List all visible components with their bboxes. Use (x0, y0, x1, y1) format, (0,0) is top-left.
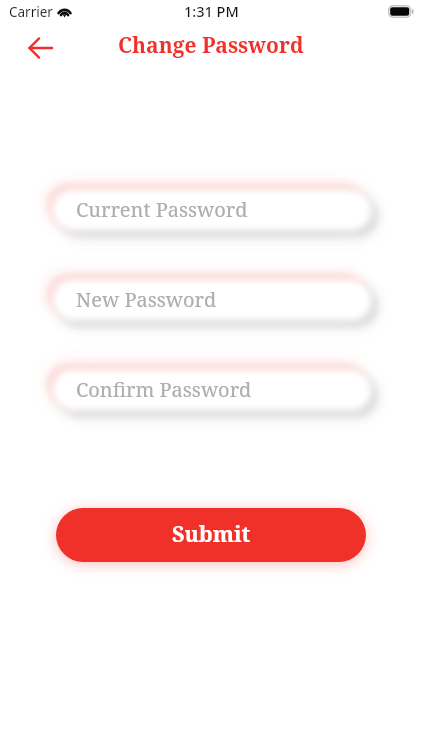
staticText: 1:31 PM (184, 1, 239, 21)
button[interactable]: Submit (40, 492, 382, 578)
staticText: Confirm Password (76, 376, 252, 403)
staticText: Submit (172, 519, 251, 548)
staticText: Carrier (9, 3, 53, 21)
button[interactable]: Back (17, 27, 59, 69)
staticText: Current Password (76, 196, 248, 223)
button[interactable]: Confirm Password (30, 347, 394, 433)
staticText: Change Password (118, 31, 304, 60)
staticText: New Password (76, 286, 217, 313)
button[interactable]: New Password (30, 257, 394, 343)
button[interactable]: Current Password (30, 167, 394, 253)
